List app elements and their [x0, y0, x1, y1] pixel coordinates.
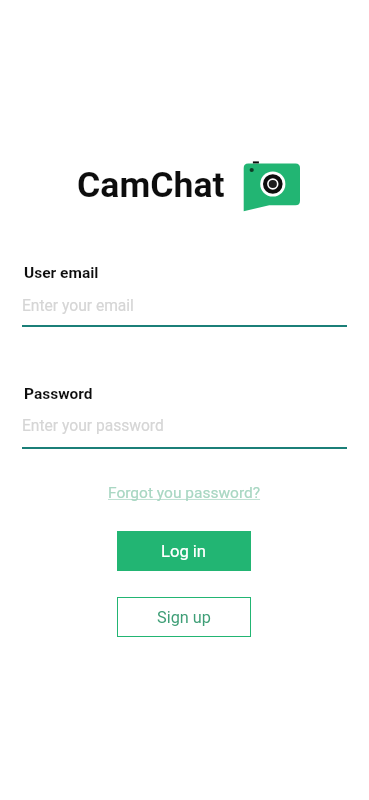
staticText: Log in	[161, 542, 207, 561]
button[interactable]: Sign up	[117, 597, 251, 637]
staticText: Sign up	[157, 608, 211, 627]
staticText: CamChat	[77, 164, 225, 206]
staticText: User email	[24, 264, 99, 282]
staticText: Forgot you password?	[108, 484, 261, 502]
button[interactable]: Enter your email	[22, 288, 347, 327]
staticText: Password	[24, 385, 93, 403]
staticText: Enter your email	[22, 297, 134, 315]
button[interactable]: Log in	[117, 531, 251, 571]
button[interactable]: Forgot you password?	[108, 484, 261, 502]
other: CamChat logo	[243, 158, 301, 212]
staticText: Enter your password	[22, 417, 164, 435]
button[interactable]: Enter your password	[22, 408, 347, 449]
